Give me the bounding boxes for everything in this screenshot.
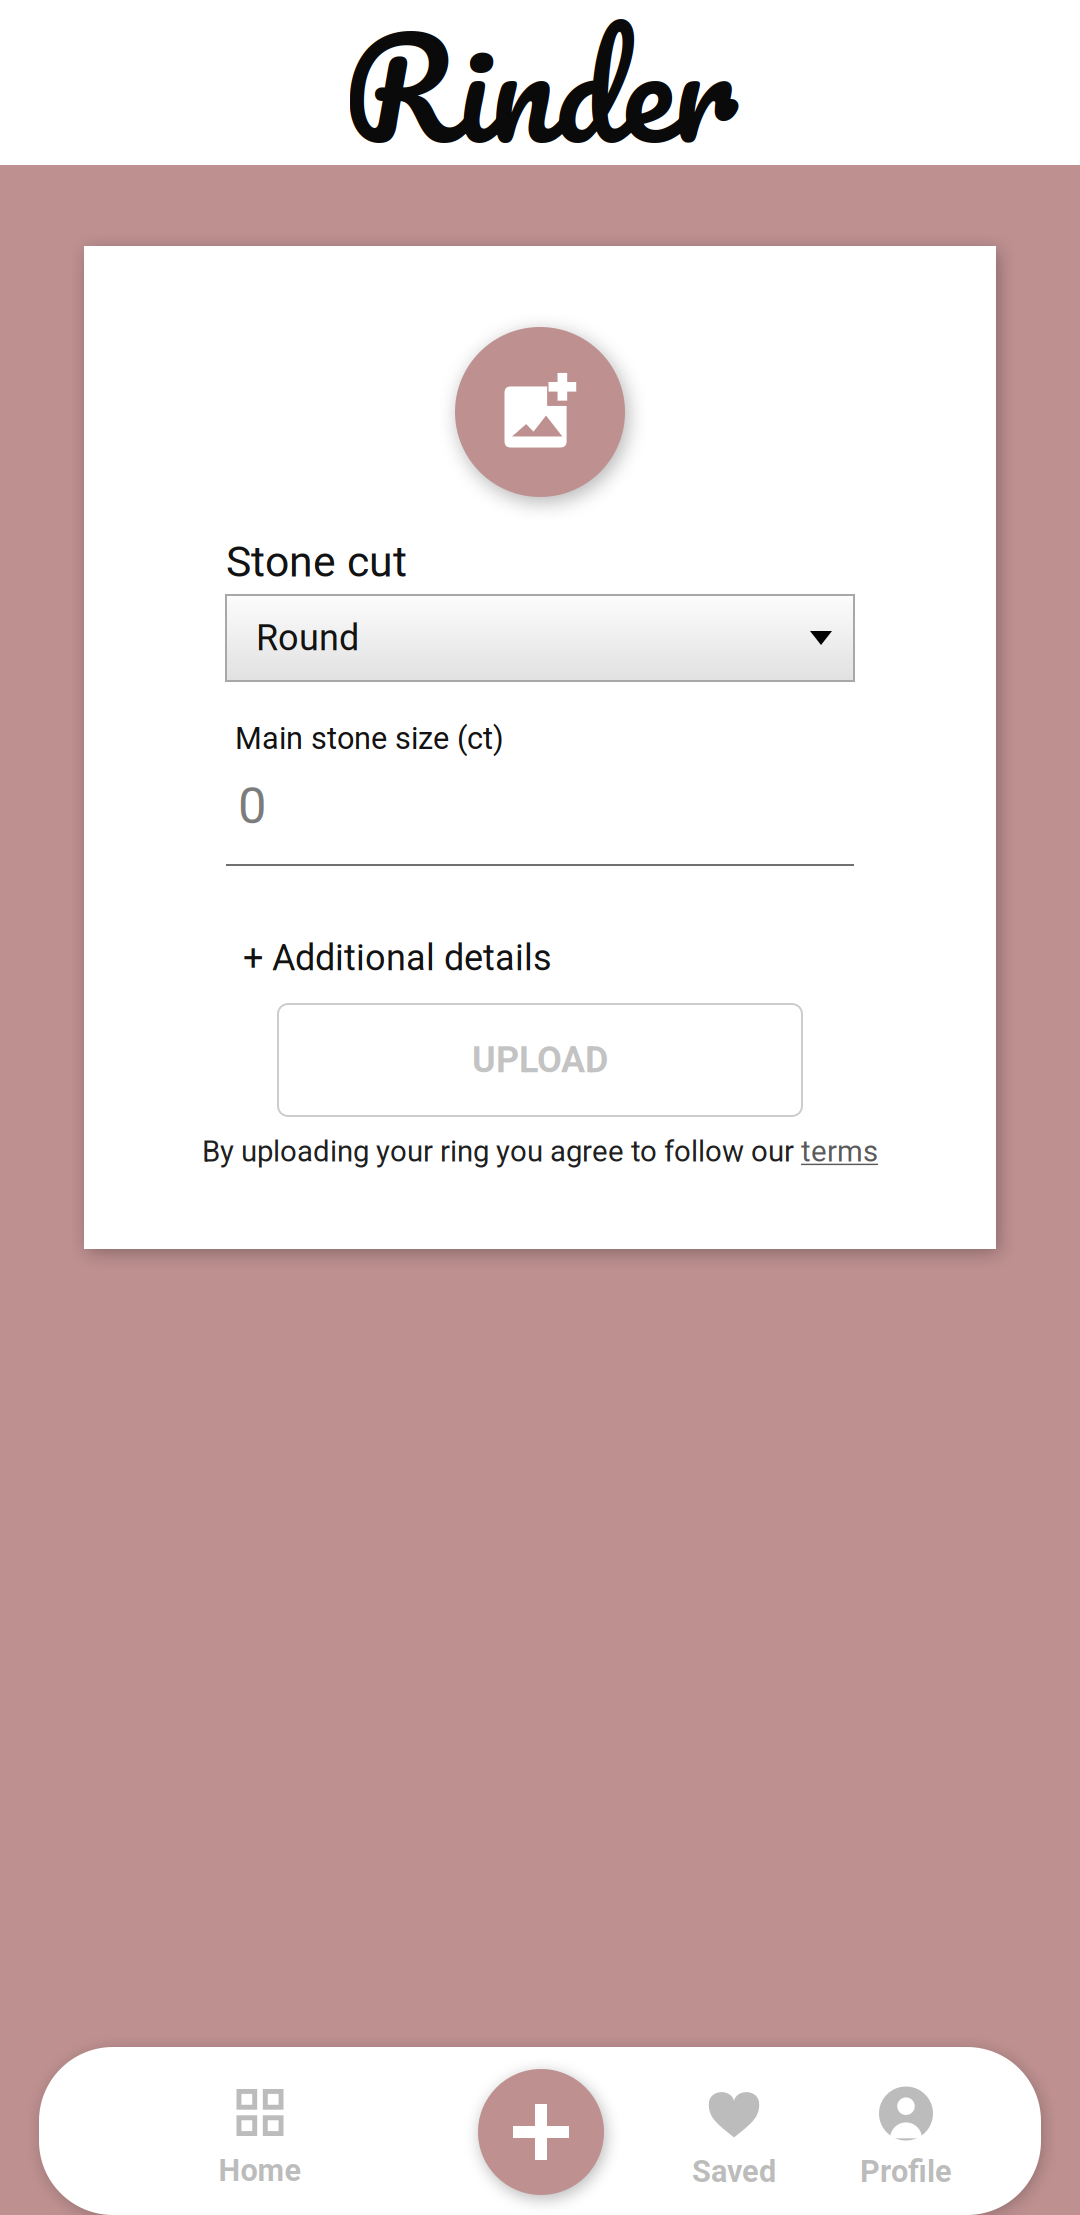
staticText: Home xyxy=(218,2152,301,2188)
button[interactable]: UPLOAD xyxy=(278,1004,802,1116)
button[interactable]: Add listing xyxy=(478,2069,604,2195)
staticText: + Additional details xyxy=(243,937,552,979)
button[interactable]: Home xyxy=(160,2088,360,2186)
button[interactable]: Round xyxy=(226,595,854,681)
staticText: Rinder xyxy=(342,0,737,201)
staticText: Main stone size (ct) xyxy=(235,720,504,756)
button[interactable]: terms xyxy=(801,1134,878,1169)
staticText: Stone cut xyxy=(226,537,407,587)
staticText: Profile xyxy=(860,2153,952,2189)
staticText: UPLOAD xyxy=(472,1039,608,1081)
button[interactable]: Profile xyxy=(806,2089,1006,2187)
button[interactable]: Add photo xyxy=(455,327,625,497)
staticText: Round xyxy=(256,617,359,659)
button[interactable]: Saved xyxy=(634,2089,834,2187)
staticText: By uploading your ring you agree to foll… xyxy=(202,1134,801,1169)
staticText: 0 xyxy=(238,776,266,836)
staticText: Saved xyxy=(692,2153,776,2189)
staticText: terms xyxy=(801,1134,878,1169)
